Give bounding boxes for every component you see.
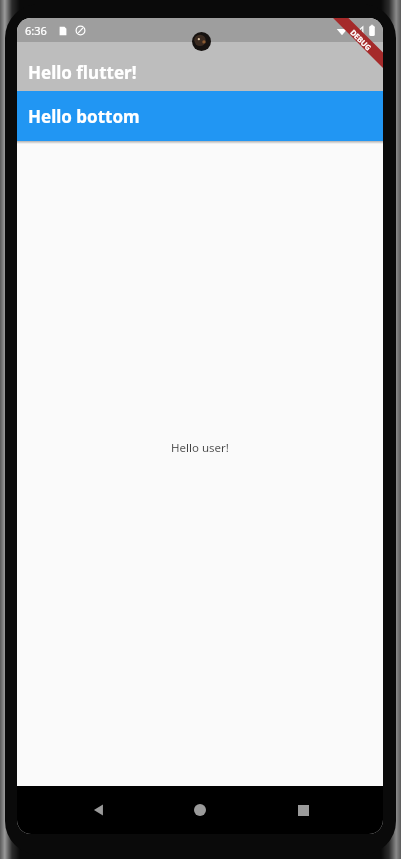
- staticText: 6:36: [25, 23, 47, 38]
- button[interactable]: Recent apps: [281, 788, 325, 832]
- staticText: Hello bottom: [28, 105, 140, 128]
- button[interactable]: Hello flutter!: [17, 42, 383, 91]
- button[interactable]: Home: [178, 788, 222, 832]
- button[interactable]: Back: [77, 788, 121, 832]
- button[interactable]: Hello bottom: [17, 91, 383, 141]
- staticText: DEBUG: [348, 27, 374, 53]
- staticText: Hello flutter!: [28, 61, 137, 84]
- staticText: Hello user!: [171, 440, 229, 456]
